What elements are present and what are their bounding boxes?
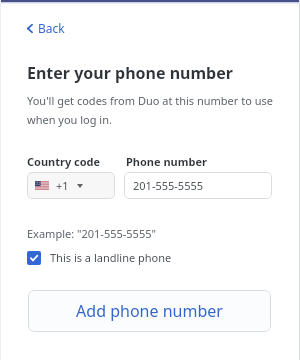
staticText: Country code xyxy=(27,154,101,169)
staticText: Enter your phone number xyxy=(27,62,233,84)
button[interactable]: This is a landline phone xyxy=(27,248,172,267)
staticText: Example: "201-555-5555" xyxy=(27,226,156,241)
staticText: This is a landline phone xyxy=(50,250,172,265)
staticText: 201-555-5555 xyxy=(133,178,204,193)
button[interactable]: 201-555-5555 xyxy=(124,172,272,199)
staticText: You'll get codes from Duo at this number… xyxy=(27,93,276,127)
button[interactable]: Country code, United States +1 xyxy=(27,172,115,199)
staticText: +1 xyxy=(56,178,69,193)
staticText: Back xyxy=(38,20,65,36)
staticText: Add phone number xyxy=(76,300,223,322)
button[interactable]: Add phone number xyxy=(28,290,271,332)
button[interactable]: Back xyxy=(22,17,70,39)
staticText: Phone number xyxy=(126,154,207,169)
